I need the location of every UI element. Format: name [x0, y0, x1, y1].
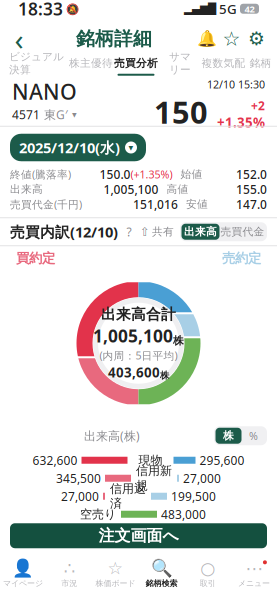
staticText: (内周：5日平均)	[99, 348, 177, 362]
staticText: 151,016	[133, 196, 178, 212]
staticText: 出来高	[184, 225, 217, 238]
staticText: ⋯	[245, 558, 262, 578]
staticText: 150.0	[99, 166, 130, 182]
staticText: マイページ	[3, 578, 43, 588]
staticText: 27,000	[183, 470, 221, 486]
staticText: 株価ボード	[95, 578, 135, 588]
staticText: 295,600	[199, 452, 244, 468]
staticText: 🔔	[196, 30, 216, 48]
button[interactable]: 株主優待	[68, 53, 113, 79]
staticText: 売買内訳(12/10)	[10, 222, 118, 241]
staticText: 150	[154, 91, 208, 132]
button[interactable]: 株	[215, 428, 241, 444]
button[interactable]: ヘルプ	[118, 222, 140, 242]
staticText: 終値(騰落率)	[10, 167, 71, 181]
staticText: 売買代金	[220, 225, 264, 238]
staticText: 株	[223, 429, 234, 442]
staticText: 信用返済	[110, 481, 146, 511]
staticText: 安値	[186, 198, 208, 211]
staticText: サマリー	[169, 50, 191, 76]
staticText: 株	[160, 370, 169, 381]
staticText: +2	[251, 98, 265, 113]
staticText: 🔍	[151, 558, 173, 578]
button[interactable]: 銘柄	[245, 53, 275, 79]
button[interactable]: 売買代金	[219, 224, 265, 240]
button[interactable]: サマリー	[158, 53, 201, 79]
staticText: 345,500	[56, 470, 101, 486]
staticText: 高値	[166, 183, 188, 196]
staticText: ▂▄▆█	[184, 3, 216, 15]
staticText: ビジュアル決算	[9, 50, 64, 76]
button[interactable]: アラート追加	[194, 26, 219, 52]
staticText: 銘柄詳細	[76, 27, 152, 50]
staticText: 現物	[138, 453, 162, 468]
staticText: 取引	[200, 578, 216, 588]
staticText: 🔕	[63, 2, 79, 16]
button[interactable]: お気に入り追加	[219, 26, 244, 52]
staticText: 注文画面へ	[98, 526, 178, 546]
staticText: ⚙	[248, 28, 265, 49]
staticText: (+1.35%)	[130, 167, 172, 181]
staticText: +1.35%	[217, 113, 265, 131]
button[interactable]: ⋯	[231, 558, 277, 590]
staticText: 1,005,100	[103, 181, 158, 197]
staticText: 155.0	[236, 181, 267, 197]
button[interactable]: ビジュアル決算	[4, 53, 68, 79]
staticText: ▾	[72, 109, 77, 120]
staticText: 42	[244, 3, 254, 15]
button[interactable]: 戻る	[4, 25, 34, 53]
staticText: 12/10 15:30	[207, 77, 265, 91]
staticText: NANO	[12, 77, 77, 106]
staticText: 5G	[216, 0, 240, 18]
staticText: 出来高(株)	[84, 428, 140, 444]
staticText: 2025/12/10(水)	[19, 138, 120, 157]
staticText: 始値	[180, 168, 202, 181]
button[interactable]: ∴	[46, 558, 92, 590]
button[interactable]: 👤	[0, 558, 46, 590]
staticText: 市況	[61, 578, 77, 588]
staticText: 出来高合計	[101, 305, 176, 323]
staticText: 東G′	[44, 107, 68, 122]
staticText: 👤	[12, 558, 34, 578]
button[interactable]: 複数気配	[201, 53, 245, 79]
staticText: ☆	[107, 558, 123, 578]
staticText: ⇧	[140, 225, 150, 238]
staticText: ○	[200, 558, 215, 578]
staticText: 1,005,100	[93, 324, 173, 347]
staticText: 152.0	[236, 166, 267, 182]
staticText: 複数気配	[201, 57, 245, 70]
button[interactable]: ⇧	[140, 222, 174, 242]
staticText: 売約定	[222, 250, 261, 267]
button[interactable]: 🔍	[138, 558, 185, 590]
staticText: 403,600	[108, 363, 160, 381]
staticText: ?	[126, 224, 131, 240]
staticText: 買約定	[16, 250, 55, 267]
staticText: ‹	[14, 19, 23, 58]
button[interactable]: 設定	[244, 26, 269, 52]
staticText: 銘柄	[249, 57, 271, 70]
button[interactable]: ○	[185, 558, 231, 590]
button[interactable]: 2025/12/10(水)	[10, 134, 146, 161]
staticText: 空売り	[80, 507, 116, 522]
staticText: 632,600	[32, 452, 77, 468]
staticText: ▾	[128, 142, 133, 153]
staticText: 売買分析	[114, 57, 158, 70]
staticText: 売買代金(千円)	[10, 197, 82, 211]
staticText: ∴	[64, 558, 75, 578]
staticText: 株	[173, 334, 184, 347]
staticText: 信用新規	[136, 463, 172, 493]
staticText: 出来高	[10, 183, 43, 196]
staticText: 株主優待	[69, 57, 113, 70]
button[interactable]: 売買分析	[113, 53, 158, 79]
staticText: 199,500	[171, 488, 216, 504]
button[interactable]: %	[241, 428, 265, 444]
staticText: 銘柄検索	[146, 578, 178, 588]
button[interactable]: 注文画面へ	[10, 523, 267, 548]
staticText: メニュー	[238, 578, 270, 588]
staticText: 共有	[152, 225, 174, 238]
staticText: 147.0	[236, 196, 267, 212]
staticText: 4571	[12, 107, 40, 122]
button[interactable]: 出来高	[181, 224, 219, 240]
staticText: ☆	[222, 27, 240, 50]
button[interactable]: ☆	[92, 558, 138, 590]
